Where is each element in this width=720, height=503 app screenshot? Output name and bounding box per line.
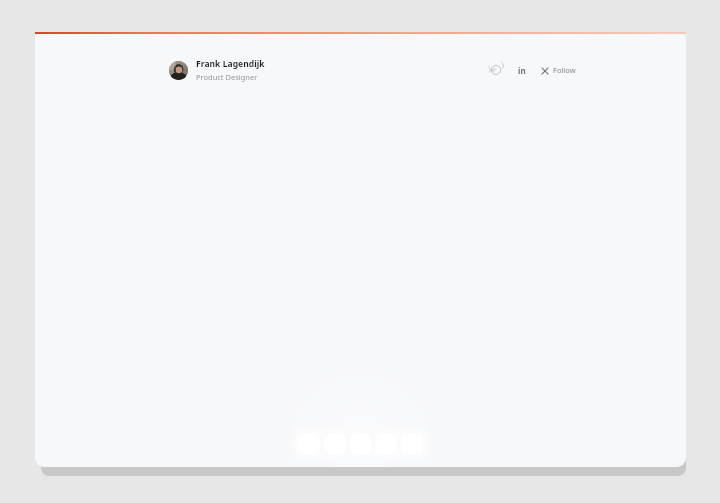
button[interactable]: Frank Lagendijk — [169, 58, 265, 82]
button[interactable]: Dribbble — [488, 62, 504, 78]
staticText: in — [518, 65, 526, 76]
staticText: Product Designer — [196, 72, 258, 82]
staticText: Frank Lagendijk — [196, 58, 265, 70]
button[interactable]: LinkedIn — [514, 62, 530, 78]
staticText: Follow — [553, 65, 576, 75]
button[interactable]: Follow — [540, 65, 576, 75]
